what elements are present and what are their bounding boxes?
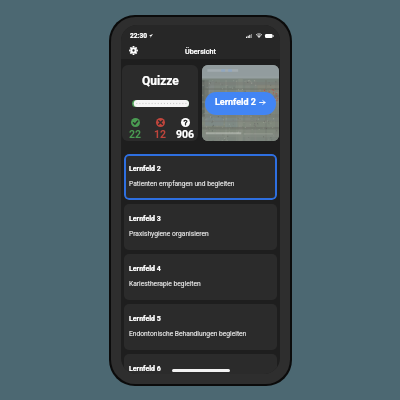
button[interactable]: Lernfeld 3 (124, 204, 277, 250)
staticText: 12 (154, 128, 167, 140)
button[interactable]: Settings (127, 44, 140, 57)
button[interactable]: Lernfeld 2 (124, 154, 277, 200)
staticText: 22:30 (130, 32, 147, 40)
staticText: Übersicht (185, 47, 216, 55)
staticText: Lernfeld 2 (129, 165, 161, 173)
staticText: Lernfeld 4 (129, 265, 161, 273)
staticText: Quizze (142, 74, 179, 88)
staticText: Lernfeld 5 (129, 315, 161, 323)
button[interactable]: Lernfeld 4 (124, 254, 277, 300)
button[interactable]: Lernfeld 2 (205, 92, 276, 115)
staticText: Lernfeld 3 (129, 215, 161, 223)
staticText: Kariestherapie begleiten (129, 280, 201, 288)
button[interactable]: Lernfeld 2 (202, 65, 279, 141)
button[interactable]: Lernfeld 5 (124, 304, 277, 350)
staticText: 22 (129, 128, 142, 140)
button[interactable]: Lernfeld 6 (124, 354, 277, 374)
staticText: Lernfeld 2 (215, 97, 256, 108)
staticText: Endontonische Behandlungen begleiten (129, 330, 247, 338)
button[interactable]: Quizze (122, 65, 198, 141)
staticText: Patienten empfangen und begleiten (129, 180, 235, 188)
staticText: Praxishygiene organisieren (129, 230, 209, 238)
staticText: Lernfeld 6 (129, 365, 161, 373)
staticText: 906 (176, 128, 195, 140)
